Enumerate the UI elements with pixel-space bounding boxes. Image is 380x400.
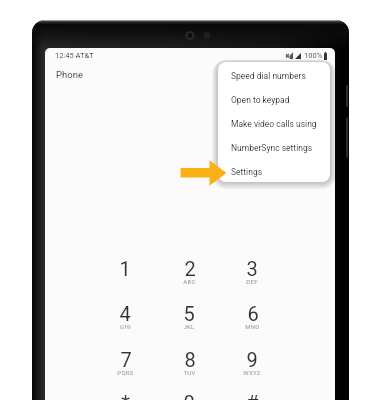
button[interactable]: # — [221, 391, 283, 400]
other: Wi-Fi calling — [286, 52, 293, 59]
staticText: 5 — [183, 302, 195, 325]
staticText: 8 — [184, 348, 196, 371]
staticText: 4 — [119, 302, 131, 325]
staticText: TUV — [183, 369, 196, 376]
button[interactable]: Phone — [56, 69, 83, 80]
staticText: DEF — [246, 278, 258, 285]
other: Signal strength — [295, 53, 301, 59]
staticText: Make video calls using — [231, 119, 317, 129]
button[interactable]: 8 — [158, 348, 220, 393]
staticText: 9 — [246, 348, 258, 371]
staticText: 100% — [304, 51, 323, 60]
staticText: Phone — [56, 69, 83, 80]
staticText: 3 — [246, 257, 258, 280]
staticText: JKL — [183, 323, 195, 330]
button[interactable]: * — [94, 391, 156, 400]
button[interactable]: 6 — [221, 302, 283, 347]
staticText: 0 — [183, 391, 195, 400]
staticText: Settings — [231, 167, 263, 177]
button[interactable]: 3 — [221, 257, 283, 302]
button[interactable]: NumberSync settings — [218, 134, 330, 158]
staticText: 1 — [119, 257, 131, 280]
button[interactable]: Open to keypad — [218, 86, 330, 110]
staticText: NumberSync settings — [231, 143, 313, 153]
button[interactable]: 0 — [158, 391, 220, 400]
staticText: Open to keypad — [231, 95, 290, 105]
button[interactable]: 4 — [94, 302, 156, 347]
staticText: MNO — [245, 323, 260, 330]
staticText: PQRS — [117, 369, 134, 376]
button[interactable]: Speed dial numbers — [218, 62, 330, 86]
staticText: 6 — [247, 302, 259, 325]
staticText: 7 — [120, 348, 132, 371]
button[interactable]: Settings — [218, 158, 330, 182]
button[interactable]: 9 — [221, 348, 283, 393]
button[interactable]: Make video calls using — [218, 110, 330, 134]
staticText: 2 — [184, 257, 196, 280]
staticText: WXYZ — [243, 369, 261, 376]
button[interactable]: 1 — [94, 257, 156, 302]
staticText: 12:45 AT&T — [55, 51, 94, 60]
other: Pointer arrow to Settings — [180, 159, 228, 187]
button[interactable]: 7 — [94, 348, 156, 393]
other: Battery full — [324, 52, 327, 60]
staticText: ABC — [183, 278, 196, 285]
staticText: * — [121, 391, 130, 400]
staticText: GHI — [120, 323, 131, 330]
button[interactable]: 5 — [158, 302, 220, 347]
staticText: Speed dial numbers — [231, 71, 306, 81]
button[interactable]: 2 — [158, 257, 220, 302]
staticText: # — [246, 391, 259, 400]
